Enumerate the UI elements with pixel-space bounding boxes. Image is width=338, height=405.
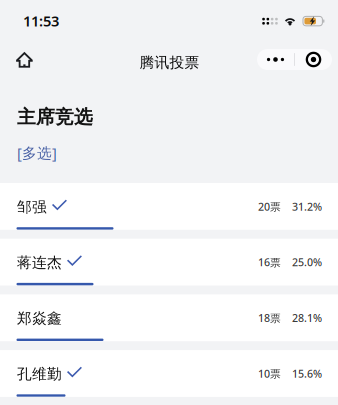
button[interactable]: Home: [7, 45, 41, 75]
button[interactable]: 孔维勤: [0, 350, 338, 397]
button[interactable]: 邹强: [0, 183, 338, 230]
staticText: 28.1%: [292, 311, 322, 325]
staticText: 31.2%: [292, 199, 322, 214]
staticText: 25.0%: [292, 255, 322, 269]
button[interactable]: 郑焱鑫: [0, 294, 338, 341]
staticText: 主席竞选: [17, 105, 93, 128]
staticText: 18票: [258, 311, 281, 325]
button[interactable]: 蒋连杰: [0, 239, 338, 285]
staticText: 蒋连杰: [17, 254, 62, 272]
staticText: 16票: [258, 255, 281, 269]
staticText: 孔维勤: [17, 365, 62, 383]
button[interactable]: Close mini program: [295, 49, 332, 70]
staticText: 郑焱鑫: [17, 309, 62, 327]
button[interactable]: More options: [257, 49, 294, 70]
staticText: 20票: [258, 199, 281, 214]
staticText: 10票: [258, 366, 281, 381]
staticText: [多选]: [17, 143, 57, 162]
staticText: 腾讯投票: [139, 53, 199, 71]
button[interactable]: [多选]: [17, 143, 57, 162]
staticText: 11:53: [23, 11, 59, 30]
staticText: 15.6%: [292, 366, 322, 381]
staticText: 邹强: [17, 198, 47, 216]
